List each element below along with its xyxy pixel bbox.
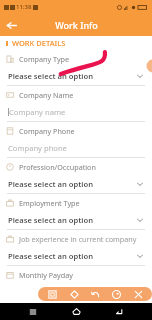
- button[interactable]: Color: [109, 287, 123, 301]
- staticText: 11:38: [16, 3, 32, 11]
- button[interactable]: Back: [0, 14, 22, 36]
- staticText: Please select an option: [8, 179, 136, 189]
- button[interactable]: Company phone: [0, 139, 152, 158]
- staticText: Company Phone: [19, 126, 75, 136]
- staticText: Company phone: [8, 143, 67, 153]
- button[interactable]: Recents: [23, 303, 43, 320]
- staticText: Employment Type: [19, 198, 80, 208]
- staticText: Please select an option: [8, 251, 136, 261]
- staticText: Work Info: [55, 19, 98, 31]
- staticText: Job experience in current company: [19, 234, 137, 244]
- staticText: Monthly Payday: [19, 270, 73, 280]
- staticText: Company Type: [19, 54, 70, 64]
- staticText: WORK DETAILS: [12, 38, 66, 48]
- staticText: Company name: [9, 107, 66, 117]
- button[interactable]: Home: [66, 303, 86, 320]
- staticText: Company Name: [19, 90, 74, 100]
- button[interactable]: Company name: [0, 103, 152, 122]
- button[interactable]: Please select an option: [0, 67, 152, 86]
- staticText: Profession/Occupation: [19, 162, 96, 172]
- staticText: Please select an option: [8, 71, 136, 81]
- button[interactable]: Please select an option: [0, 211, 152, 230]
- button[interactable]: Undo: [88, 287, 102, 301]
- button[interactable]: Highlight: [67, 287, 81, 301]
- button[interactable]: Back: [109, 303, 129, 320]
- staticText: Please select an option: [8, 215, 136, 225]
- button[interactable]: Crop: [45, 287, 59, 301]
- button[interactable]: Close: [131, 287, 145, 301]
- button[interactable]: Please select an option: [0, 175, 152, 194]
- button[interactable]: Please select an option: [0, 247, 152, 266]
